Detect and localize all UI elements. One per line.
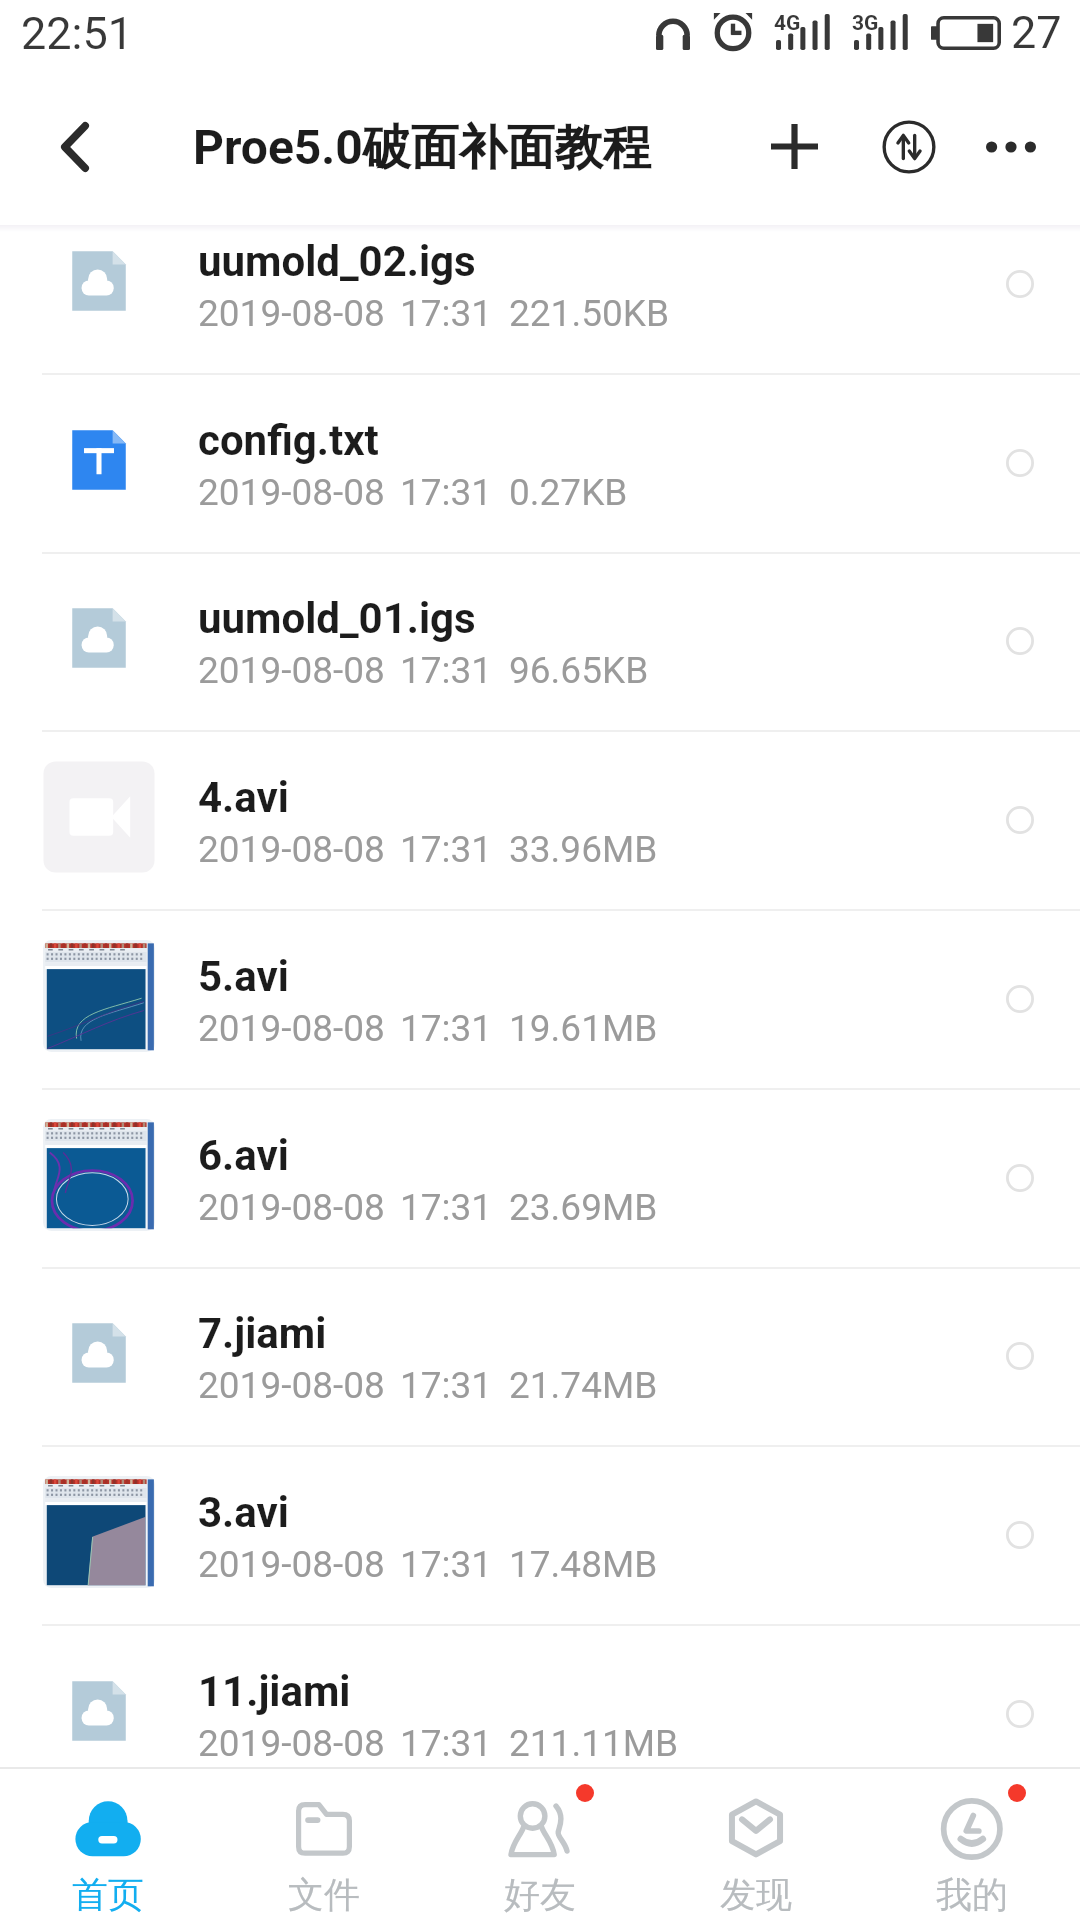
button[interactable]: Select file (991, 970, 1049, 1028)
staticText: 33.96MB (509, 828, 658, 871)
staticText: Proe5.0破面补面教程 (193, 118, 651, 178)
button[interactable]: 4.avi (0, 732, 1080, 911)
staticText: 2019-08-08 (198, 292, 385, 335)
button[interactable]: Select file (991, 1506, 1049, 1564)
staticText: 19.61MB (509, 1007, 658, 1050)
staticText: 2019-08-08 (198, 1364, 385, 1407)
staticText: 22:51 (21, 7, 134, 60)
button[interactable]: uumold_02.igs (0, 225, 1080, 375)
button[interactable]: More options (965, 101, 1057, 193)
staticText: 2019-08-08 (198, 471, 385, 514)
staticText: 好友 (504, 1872, 576, 1917)
staticText: 文件 (288, 1872, 360, 1917)
staticText: 17:31 (400, 1186, 493, 1229)
button[interactable]: 好友 (432, 1769, 648, 1920)
staticText: 17:31 (400, 828, 493, 871)
staticText: 27 (1011, 6, 1062, 59)
button[interactable]: Back (27, 99, 123, 195)
button[interactable]: Select file (991, 791, 1049, 849)
button[interactable]: 7.jiami (0, 1268, 1080, 1447)
button[interactable]: 6.avi (0, 1090, 1080, 1269)
staticText: 211.11MB (509, 1722, 679, 1765)
staticText: 首页 (72, 1872, 144, 1917)
button[interactable]: Select file (991, 255, 1049, 313)
staticText: 2019-08-08 (198, 1722, 385, 1765)
staticText: 3.avi (198, 1488, 289, 1537)
button[interactable]: Transfer list (863, 101, 955, 193)
staticText: 17:31 (400, 292, 493, 335)
staticText: 11.jiami (198, 1667, 351, 1716)
staticText: 17:31 (400, 471, 493, 514)
staticText: 4.avi (198, 773, 289, 822)
button[interactable]: uumold_01.igs (0, 553, 1080, 732)
staticText: 17:31 (400, 1543, 493, 1586)
button[interactable]: 文件 (216, 1769, 432, 1920)
staticText: 23.69MB (509, 1186, 658, 1229)
staticText: 2019-08-08 (198, 1007, 385, 1050)
button[interactable]: Select file (991, 612, 1049, 670)
staticText: 4G (774, 11, 801, 36)
button[interactable]: 5.avi (0, 911, 1080, 1090)
staticText: 96.65KB (509, 649, 649, 692)
staticText: 17:31 (400, 1364, 493, 1407)
staticText: 3G (852, 11, 879, 36)
button[interactable]: Select file (991, 434, 1049, 492)
staticText: 17.48MB (509, 1543, 658, 1586)
button[interactable]: Add (748, 100, 840, 192)
staticText: 6.avi (198, 1131, 289, 1180)
button[interactable]: 我的 (864, 1769, 1080, 1920)
button[interactable]: 3.avi (0, 1447, 1080, 1626)
button[interactable]: Select file (991, 1685, 1049, 1743)
button[interactable]: Select file (991, 1327, 1049, 1385)
staticText: 7.jiami (198, 1309, 327, 1358)
staticText: 21.74MB (509, 1364, 658, 1407)
staticText: 0.27KB (509, 471, 628, 514)
staticText: 17:31 (400, 1722, 493, 1765)
staticText: 发现 (720, 1872, 792, 1917)
button[interactable]: config.txt (0, 375, 1080, 554)
staticText: 17:31 (400, 649, 493, 692)
staticText: 2019-08-08 (198, 828, 385, 871)
button[interactable]: 11.jiami (0, 1626, 1080, 1767)
staticText: 221.50KB (509, 292, 669, 335)
staticText: 我的 (936, 1872, 1008, 1917)
staticText: 2019-08-08 (198, 1186, 385, 1229)
button[interactable]: 发现 (648, 1769, 864, 1920)
staticText: 17:31 (400, 1007, 493, 1050)
staticText: config.txt (198, 416, 379, 465)
staticText: 5.avi (198, 952, 289, 1001)
staticText: 2019-08-08 (198, 1543, 385, 1586)
staticText: uumold_01.igs (198, 594, 476, 643)
button[interactable]: 首页 (0, 1769, 216, 1920)
button[interactable]: Select file (991, 1149, 1049, 1207)
staticText: uumold_02.igs (198, 237, 476, 286)
staticText: 2019-08-08 (198, 649, 385, 692)
